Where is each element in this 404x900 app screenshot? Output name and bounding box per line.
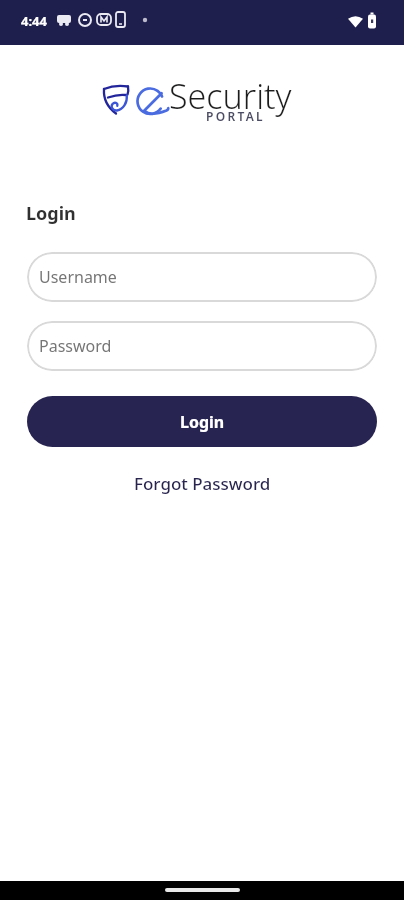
button[interactable]: Username xyxy=(27,252,377,302)
button[interactable]: Forgot Password xyxy=(126,468,279,499)
staticText: Password xyxy=(39,335,112,357)
staticText: Login xyxy=(180,411,225,433)
staticText: Forgot Password xyxy=(134,472,271,495)
staticText: Security xyxy=(169,73,292,119)
staticText: 4:44 xyxy=(21,12,47,30)
button[interactable]: Login xyxy=(27,396,377,447)
staticText: Username xyxy=(39,266,117,288)
button[interactable]: Password xyxy=(27,321,377,371)
staticText: PORTAL xyxy=(206,108,265,124)
staticText: Login xyxy=(26,201,76,226)
